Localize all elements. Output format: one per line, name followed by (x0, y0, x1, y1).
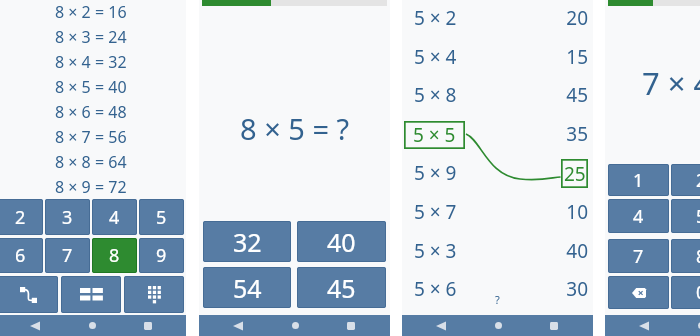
button[interactable]: Recent apps (340, 315, 362, 336)
button[interactable]: 40 (297, 221, 386, 262)
staticText: 5 (696, 204, 700, 229)
staticText: 8 × 7 = 56 (55, 126, 127, 148)
staticText: 10 (554, 199, 588, 219)
staticText: 5 × 2 (414, 5, 554, 25)
staticText: 3 (62, 205, 73, 230)
staticText: 8 × 8 = 64 (55, 151, 127, 173)
staticText: 2 (15, 205, 26, 230)
staticText: 5 (156, 205, 167, 230)
staticText: ? (495, 292, 500, 307)
staticText: 7 (633, 244, 644, 269)
button[interactable]: Back (24, 315, 46, 336)
staticText: 8 × 9 = 72 (55, 176, 127, 198)
button[interactable]: 54 (203, 267, 291, 308)
staticText: 5 × 6 (414, 276, 554, 296)
staticText: 54 (233, 271, 262, 305)
button[interactable]: 32 (203, 221, 291, 262)
button[interactable]: Home (284, 315, 306, 336)
staticText: 8 × 5 = 40 (55, 76, 127, 98)
button[interactable]: 25 (561, 159, 588, 188)
staticText: 5 × 4 (414, 44, 554, 64)
button[interactable]: 2 (671, 164, 700, 196)
staticText: 5 × 3 (414, 238, 554, 258)
button[interactable]: 0 (671, 276, 700, 309)
staticText: 35 (554, 121, 588, 141)
button[interactable]: 8 (92, 238, 137, 273)
staticText: 15 (554, 44, 588, 64)
button[interactable]: 45 (297, 267, 386, 308)
button[interactable]: Home (81, 315, 103, 336)
staticText: 8 × 6 = 48 (55, 101, 127, 123)
button[interactable]: 8 (671, 239, 700, 273)
staticText: 5 × 8 (414, 82, 554, 102)
staticText: 7 × 4 = ? (642, 62, 700, 104)
button[interactable]: Home (487, 315, 509, 336)
button[interactable]: Back (633, 315, 655, 336)
button[interactable]: Recent apps (543, 315, 565, 336)
staticText: 20 (554, 5, 588, 25)
staticText: 40 (327, 225, 356, 259)
button[interactable]: Home (690, 315, 700, 336)
staticText: 25 (564, 161, 586, 187)
staticText: 45 (327, 271, 356, 305)
staticText: 1 (633, 168, 644, 193)
staticText: 8 × 3 = 24 (55, 26, 127, 48)
button[interactable]: Recent apps (137, 315, 159, 336)
staticText: 5 × 5 (413, 122, 456, 148)
staticText: 2 (696, 168, 700, 193)
staticText: 6 (15, 243, 26, 268)
staticText: 7 (62, 243, 73, 268)
button[interactable]: 1 (608, 164, 669, 196)
button[interactable]: 3 (45, 199, 90, 235)
button[interactable]: Matching game (0, 276, 58, 313)
staticText: 5 × 7 (414, 199, 554, 219)
staticText: 8 × 2 = 16 (55, 1, 127, 23)
staticText: 8 (109, 243, 120, 268)
button[interactable]: Back (227, 315, 249, 336)
button[interactable]: 4 (608, 199, 669, 233)
button[interactable]: 5 (139, 199, 184, 235)
button[interactable]: 7 (608, 239, 669, 273)
staticText: 5 × 9 (414, 160, 554, 180)
button[interactable]: Keypad input (124, 276, 184, 313)
button[interactable]: Back (430, 315, 452, 336)
staticText: 4 (633, 204, 644, 229)
staticText: 45 (554, 82, 588, 102)
staticText: 40 (554, 238, 588, 258)
button[interactable]: Multiple choice (61, 276, 121, 313)
button[interactable]: 9 (139, 238, 184, 273)
button[interactable]: 5 (671, 199, 700, 233)
staticText: 0 (696, 280, 700, 305)
staticText: 30 (554, 276, 588, 296)
staticText: 32 (233, 225, 262, 259)
button[interactable]: 5 × 5 (404, 121, 465, 149)
staticText: 8 (696, 244, 700, 269)
button[interactable]: Backspace (608, 276, 669, 309)
staticText: 8 × 5 = ? (240, 109, 350, 148)
button[interactable]: 7 (45, 238, 90, 273)
staticText: 8 × 4 = 32 (55, 51, 127, 73)
staticText: 4 (109, 205, 120, 230)
button[interactable]: 4 (92, 199, 137, 235)
button[interactable]: 2 (0, 199, 43, 235)
staticText: 9 (156, 243, 167, 268)
button[interactable]: 6 (0, 238, 43, 273)
